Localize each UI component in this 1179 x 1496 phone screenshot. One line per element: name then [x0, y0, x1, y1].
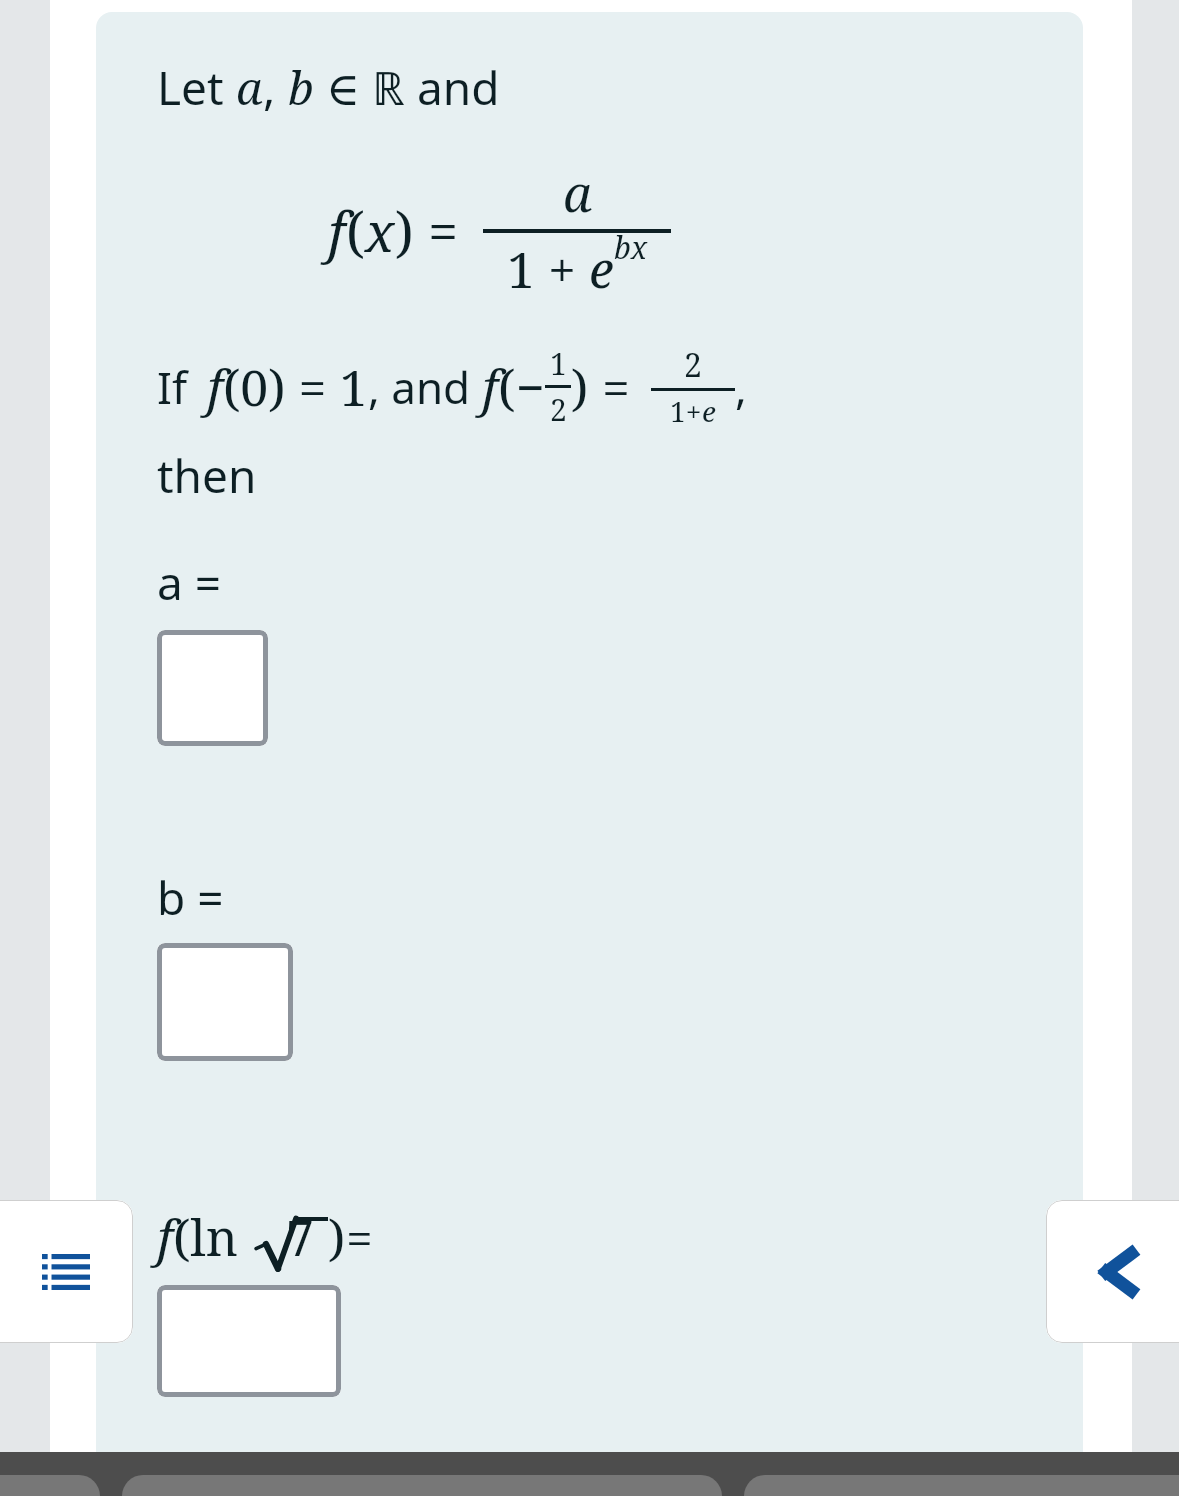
staticText: f — [207, 353, 223, 421]
staticText: , — [263, 56, 288, 119]
button[interactable]: Menu — [0, 1200, 133, 1343]
staticText: bx — [614, 227, 648, 268]
staticText: a — [236, 56, 263, 119]
button[interactable]: Answer for b — [157, 943, 293, 1061]
staticText: e — [589, 235, 614, 303]
staticText: = — [414, 194, 473, 268]
staticText: ( — [346, 194, 365, 268]
staticText: = — [346, 1205, 373, 1270]
staticText: and — [405, 56, 500, 119]
button[interactable]: Back — [1046, 1200, 1179, 1343]
staticText: a = — [157, 551, 222, 614]
button[interactable]: Answer for a — [157, 630, 268, 746]
staticText: ∈ — [314, 56, 372, 119]
staticText: b = — [157, 866, 224, 929]
staticText: ) — [328, 1203, 346, 1271]
staticText: 1+ — [670, 392, 702, 430]
staticText: 2 — [550, 389, 567, 430]
staticText: x — [365, 194, 395, 268]
staticText: 1 — [550, 343, 567, 384]
staticText: , — [735, 357, 747, 417]
staticText: ( — [498, 353, 516, 421]
staticText: 2 — [684, 343, 702, 387]
button[interactable]: Answer for f(ln sqrt 7) — [157, 1285, 341, 1397]
staticText: , and — [368, 357, 482, 417]
staticText: 1 + — [507, 235, 589, 303]
staticText: Let — [157, 56, 236, 119]
staticText: 7 — [286, 1203, 314, 1271]
staticText: f — [482, 353, 498, 421]
staticText: f — [157, 1203, 173, 1271]
staticText: − — [516, 353, 545, 421]
staticText: = — [589, 353, 643, 421]
staticText: ) — [395, 194, 414, 268]
staticText: If — [157, 357, 199, 417]
staticText: f — [328, 194, 346, 268]
staticText: (0) = 1 — [223, 353, 368, 421]
staticText: ) — [571, 353, 589, 421]
staticText: (ln — [173, 1203, 252, 1271]
staticText: then — [157, 444, 257, 507]
staticText: a — [563, 159, 592, 227]
staticText: ℝ — [372, 56, 405, 119]
staticText: b — [288, 56, 314, 119]
staticText: e — [702, 392, 716, 430]
